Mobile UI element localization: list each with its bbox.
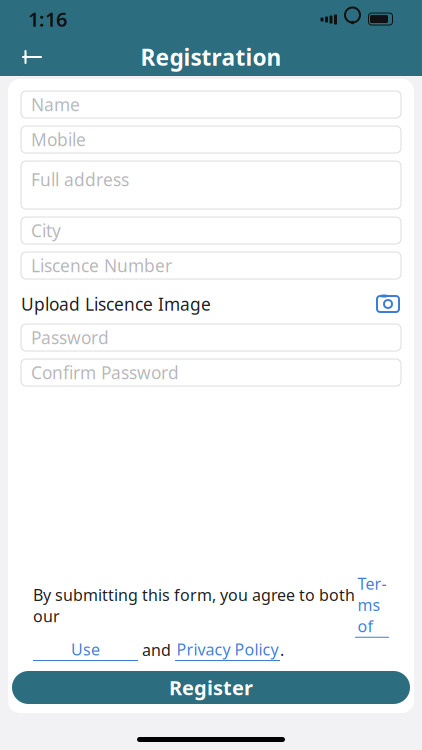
button[interactable]: Password	[21, 324, 401, 351]
staticText: Liscence Number	[31, 254, 172, 277]
button[interactable]: Upload Liscence Image	[21, 287, 401, 321]
staticText: Password	[31, 326, 109, 349]
staticText: and	[138, 639, 175, 660]
staticText: Confirm Password	[31, 361, 179, 384]
button[interactable]: City	[21, 217, 401, 244]
staticText: 1:16	[28, 6, 67, 32]
button[interactable]: Use	[33, 639, 138, 661]
button[interactable]: Register	[12, 671, 410, 704]
button[interactable]: Confirm Password	[21, 359, 401, 386]
staticText: By submitting this form, you agree to bo…	[33, 584, 355, 627]
button[interactable]: Mobile	[21, 126, 401, 153]
button[interactable]: Terms of	[355, 573, 389, 638]
staticText: Use	[71, 639, 100, 660]
button[interactable]: Full address	[21, 161, 401, 209]
staticText: Privacy Policy	[176, 639, 278, 660]
button[interactable]: Liscence Number	[21, 252, 401, 279]
staticText: Terms of	[357, 573, 386, 637]
staticText: Register	[169, 674, 253, 701]
button[interactable]: Name	[21, 91, 401, 118]
button[interactable]: Back	[10, 38, 54, 76]
staticText: Registration	[140, 42, 281, 72]
staticText: Name	[31, 93, 80, 116]
staticText: City	[31, 219, 61, 242]
staticText: Upload Liscence Image	[21, 292, 211, 315]
staticText: Mobile	[31, 128, 86, 151]
staticText: .	[280, 639, 284, 660]
staticText: Full address	[31, 168, 129, 191]
button[interactable]: Privacy Policy	[175, 639, 280, 661]
